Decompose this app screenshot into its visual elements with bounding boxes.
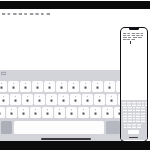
button[interactable]: Key: [8, 81, 19, 92]
button[interactable]: Key: [124, 124, 126, 128]
button[interactable]: Key: [138, 107, 140, 111]
button[interactable]: Key: [123, 118, 125, 122]
button[interactable]: Key: [114, 107, 125, 118]
button[interactable]: Key: [30, 107, 41, 118]
button[interactable]: Key: [70, 94, 81, 105]
button[interactable]: Key: [94, 94, 105, 105]
button[interactable]: Key: [132, 102, 134, 106]
button[interactable]: Key: [134, 124, 136, 128]
button[interactable]: Key: [54, 107, 65, 118]
button[interactable]: Key: [102, 107, 113, 118]
button[interactable]: Key: [137, 102, 139, 106]
button[interactable]: Key: [128, 113, 130, 117]
button[interactable]: Key: [20, 81, 31, 92]
button[interactable]: Key: [130, 118, 132, 122]
button[interactable]: Key: [124, 102, 126, 106]
button[interactable]: Key: [129, 102, 131, 106]
button[interactable]: Key: [123, 107, 125, 111]
button[interactable]: Key: [139, 124, 141, 128]
button[interactable]: Key: [58, 94, 69, 105]
button[interactable]: Key: [0, 94, 9, 105]
button[interactable]: Key: [92, 81, 103, 92]
button[interactable]: Home indicator: [41, 138, 91, 140]
button[interactable]: Key: [80, 81, 91, 92]
button[interactable]: Key: [116, 81, 127, 92]
button[interactable]: Key: [133, 118, 135, 122]
button[interactable]: Key: [44, 81, 55, 92]
button[interactable]: Key: [142, 102, 144, 106]
button[interactable]: Key: [143, 118, 145, 122]
button[interactable]: Key: [127, 124, 129, 128]
button[interactable]: Key: [34, 94, 45, 105]
button[interactable]: Key: [82, 94, 93, 105]
button[interactable]: Key: [141, 113, 143, 117]
button[interactable]: Key: [139, 102, 141, 106]
button[interactable]: Key: [132, 124, 134, 128]
button[interactable]: Key: [133, 113, 135, 117]
button[interactable]: Key: [127, 102, 129, 106]
button[interactable]: Key: [134, 102, 136, 106]
button[interactable]: Key: [138, 118, 140, 122]
button[interactable]: Key: [66, 107, 77, 118]
button[interactable]: Key: [143, 113, 145, 117]
button[interactable]: Key: [0, 107, 5, 118]
button[interactable]: Key: [122, 102, 124, 106]
button[interactable]: Key: [130, 113, 132, 117]
button[interactable]: Key: [136, 107, 138, 111]
button[interactable]: Key: [10, 94, 21, 105]
button[interactable]: Key: [123, 113, 125, 117]
button[interactable]: Key: [46, 94, 57, 105]
button[interactable]: Key: [90, 107, 101, 118]
button[interactable]: Key: [136, 113, 138, 117]
button[interactable]: Key: [125, 107, 127, 111]
button[interactable]: Key: [129, 124, 131, 128]
button[interactable]: Key: [1, 121, 12, 134]
button[interactable]: Key: [0, 81, 7, 92]
button[interactable]: Key: [141, 107, 143, 111]
button[interactable]: Key: [118, 94, 129, 105]
button[interactable]: Key: [136, 118, 138, 122]
button[interactable]: Key: [125, 113, 127, 117]
button[interactable]: Key: [128, 118, 130, 122]
button[interactable]: Key: [22, 94, 33, 105]
button[interactable]: Key: [104, 81, 115, 92]
button[interactable]: Key: [42, 107, 53, 118]
button[interactable]: Key: [68, 81, 79, 92]
button[interactable]: Key: [143, 107, 145, 111]
button[interactable]: Key: [141, 118, 143, 122]
button[interactable]: Key: [78, 107, 89, 118]
button[interactable]: Key: [6, 107, 17, 118]
button[interactable]: Key: [133, 107, 135, 111]
button[interactable]: Key: [32, 81, 43, 92]
button[interactable]: Key: [106, 94, 117, 105]
button[interactable]: Key: [137, 124, 139, 128]
button[interactable]: Key: [125, 118, 127, 122]
button[interactable]: Key: [138, 113, 140, 117]
button[interactable]: Key: [145, 102, 147, 106]
button[interactable]: Key: [56, 81, 67, 92]
button[interactable]: Key: [18, 107, 29, 118]
button[interactable]: Key: [130, 107, 132, 111]
button[interactable]: Key: [128, 107, 130, 111]
